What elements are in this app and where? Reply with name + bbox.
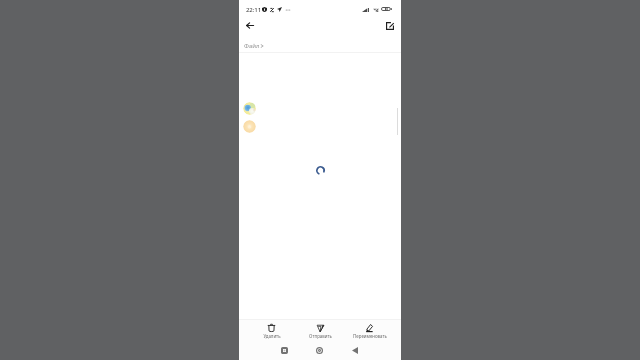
staticText: 22:11 — [246, 5, 262, 12]
button[interactable]: Recents — [278, 344, 291, 357]
button[interactable]: Файл — [244, 39, 263, 52]
button[interactable]: Home — [313, 344, 326, 357]
staticText: Переименовать — [353, 333, 387, 339]
button[interactable]: Avatar — [243, 120, 256, 133]
staticText: Отправить — [309, 333, 332, 339]
button[interactable]: Отправить — [296, 320, 345, 342]
button[interactable]: Back — [243, 19, 257, 32]
button[interactable]: Back — [348, 344, 361, 357]
button[interactable]: Переименовать — [345, 320, 394, 342]
staticText: Удалить — [263, 333, 281, 339]
staticText: Файл — [244, 42, 260, 50]
button[interactable]: Compose — [383, 19, 397, 32]
button[interactable]: Avatar — [243, 102, 256, 115]
button[interactable]: Удалить — [247, 320, 296, 342]
